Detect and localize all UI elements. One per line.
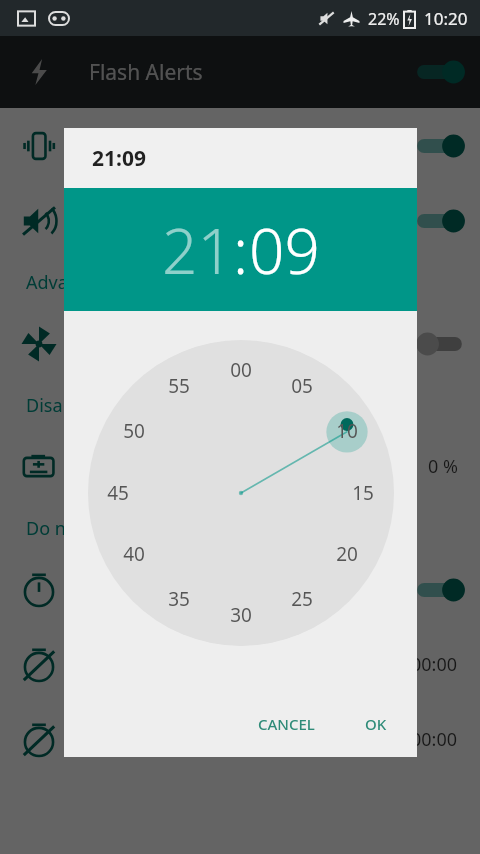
staticText: CANCEL <box>258 714 315 734</box>
button[interactable]: Cooling <box>0 306 480 381</box>
staticText: 35 <box>168 586 190 612</box>
staticText: 00:00 <box>411 652 458 677</box>
staticText: 22% <box>368 8 400 30</box>
staticText: 21:09 <box>92 144 146 173</box>
button[interactable]: Toggle <box>414 329 466 359</box>
button[interactable]: Vibrate <box>0 108 480 183</box>
button[interactable]: Toggle <box>414 206 466 236</box>
other: Flash <box>26 59 52 85</box>
staticText: Disable on low battery <box>26 393 215 418</box>
button[interactable]: Flash <box>0 36 480 108</box>
staticText: 20 <box>336 541 358 567</box>
staticText: 25 <box>291 586 313 612</box>
button[interactable]: CANCEL <box>246 706 327 742</box>
staticText: 55 <box>168 373 190 399</box>
staticText: 10:20 <box>424 7 468 30</box>
staticText: 15 <box>352 480 374 506</box>
staticText: Battery level <box>84 454 189 479</box>
staticText: 00 <box>230 357 252 383</box>
staticText: 40 <box>123 541 145 567</box>
staticText: OK <box>365 714 387 734</box>
staticText: 0 % <box>428 454 458 479</box>
button[interactable]: Battery level <box>0 429 480 504</box>
button[interactable]: Toggle <box>414 57 466 87</box>
staticText: 50 <box>123 418 145 444</box>
staticText: 00:00 <box>411 727 458 752</box>
staticText: Schedule <box>84 577 161 602</box>
button[interactable]: 09 <box>249 208 320 292</box>
staticText: Do not disturb <box>26 516 149 541</box>
staticText: 10 <box>336 418 358 444</box>
button[interactable]: Start <box>0 627 480 702</box>
staticText: 05 <box>291 373 313 399</box>
staticText: Advanced <box>26 270 109 295</box>
button[interactable]: End <box>0 702 480 777</box>
button[interactable]: Toggle <box>414 575 466 605</box>
staticText: : <box>233 208 249 292</box>
staticText: Flash Alerts <box>89 58 203 87</box>
button[interactable]: Silent <box>0 183 480 258</box>
button[interactable]: 00 <box>88 340 394 646</box>
button[interactable]: 21 <box>162 208 233 292</box>
button[interactable]: OK <box>353 706 399 742</box>
staticText: Vibrate <box>84 133 145 158</box>
staticText: 30 <box>230 602 252 628</box>
staticText: 45 <box>107 480 129 506</box>
button[interactable]: Schedule <box>0 552 480 627</box>
button[interactable]: Toggle <box>414 131 466 161</box>
